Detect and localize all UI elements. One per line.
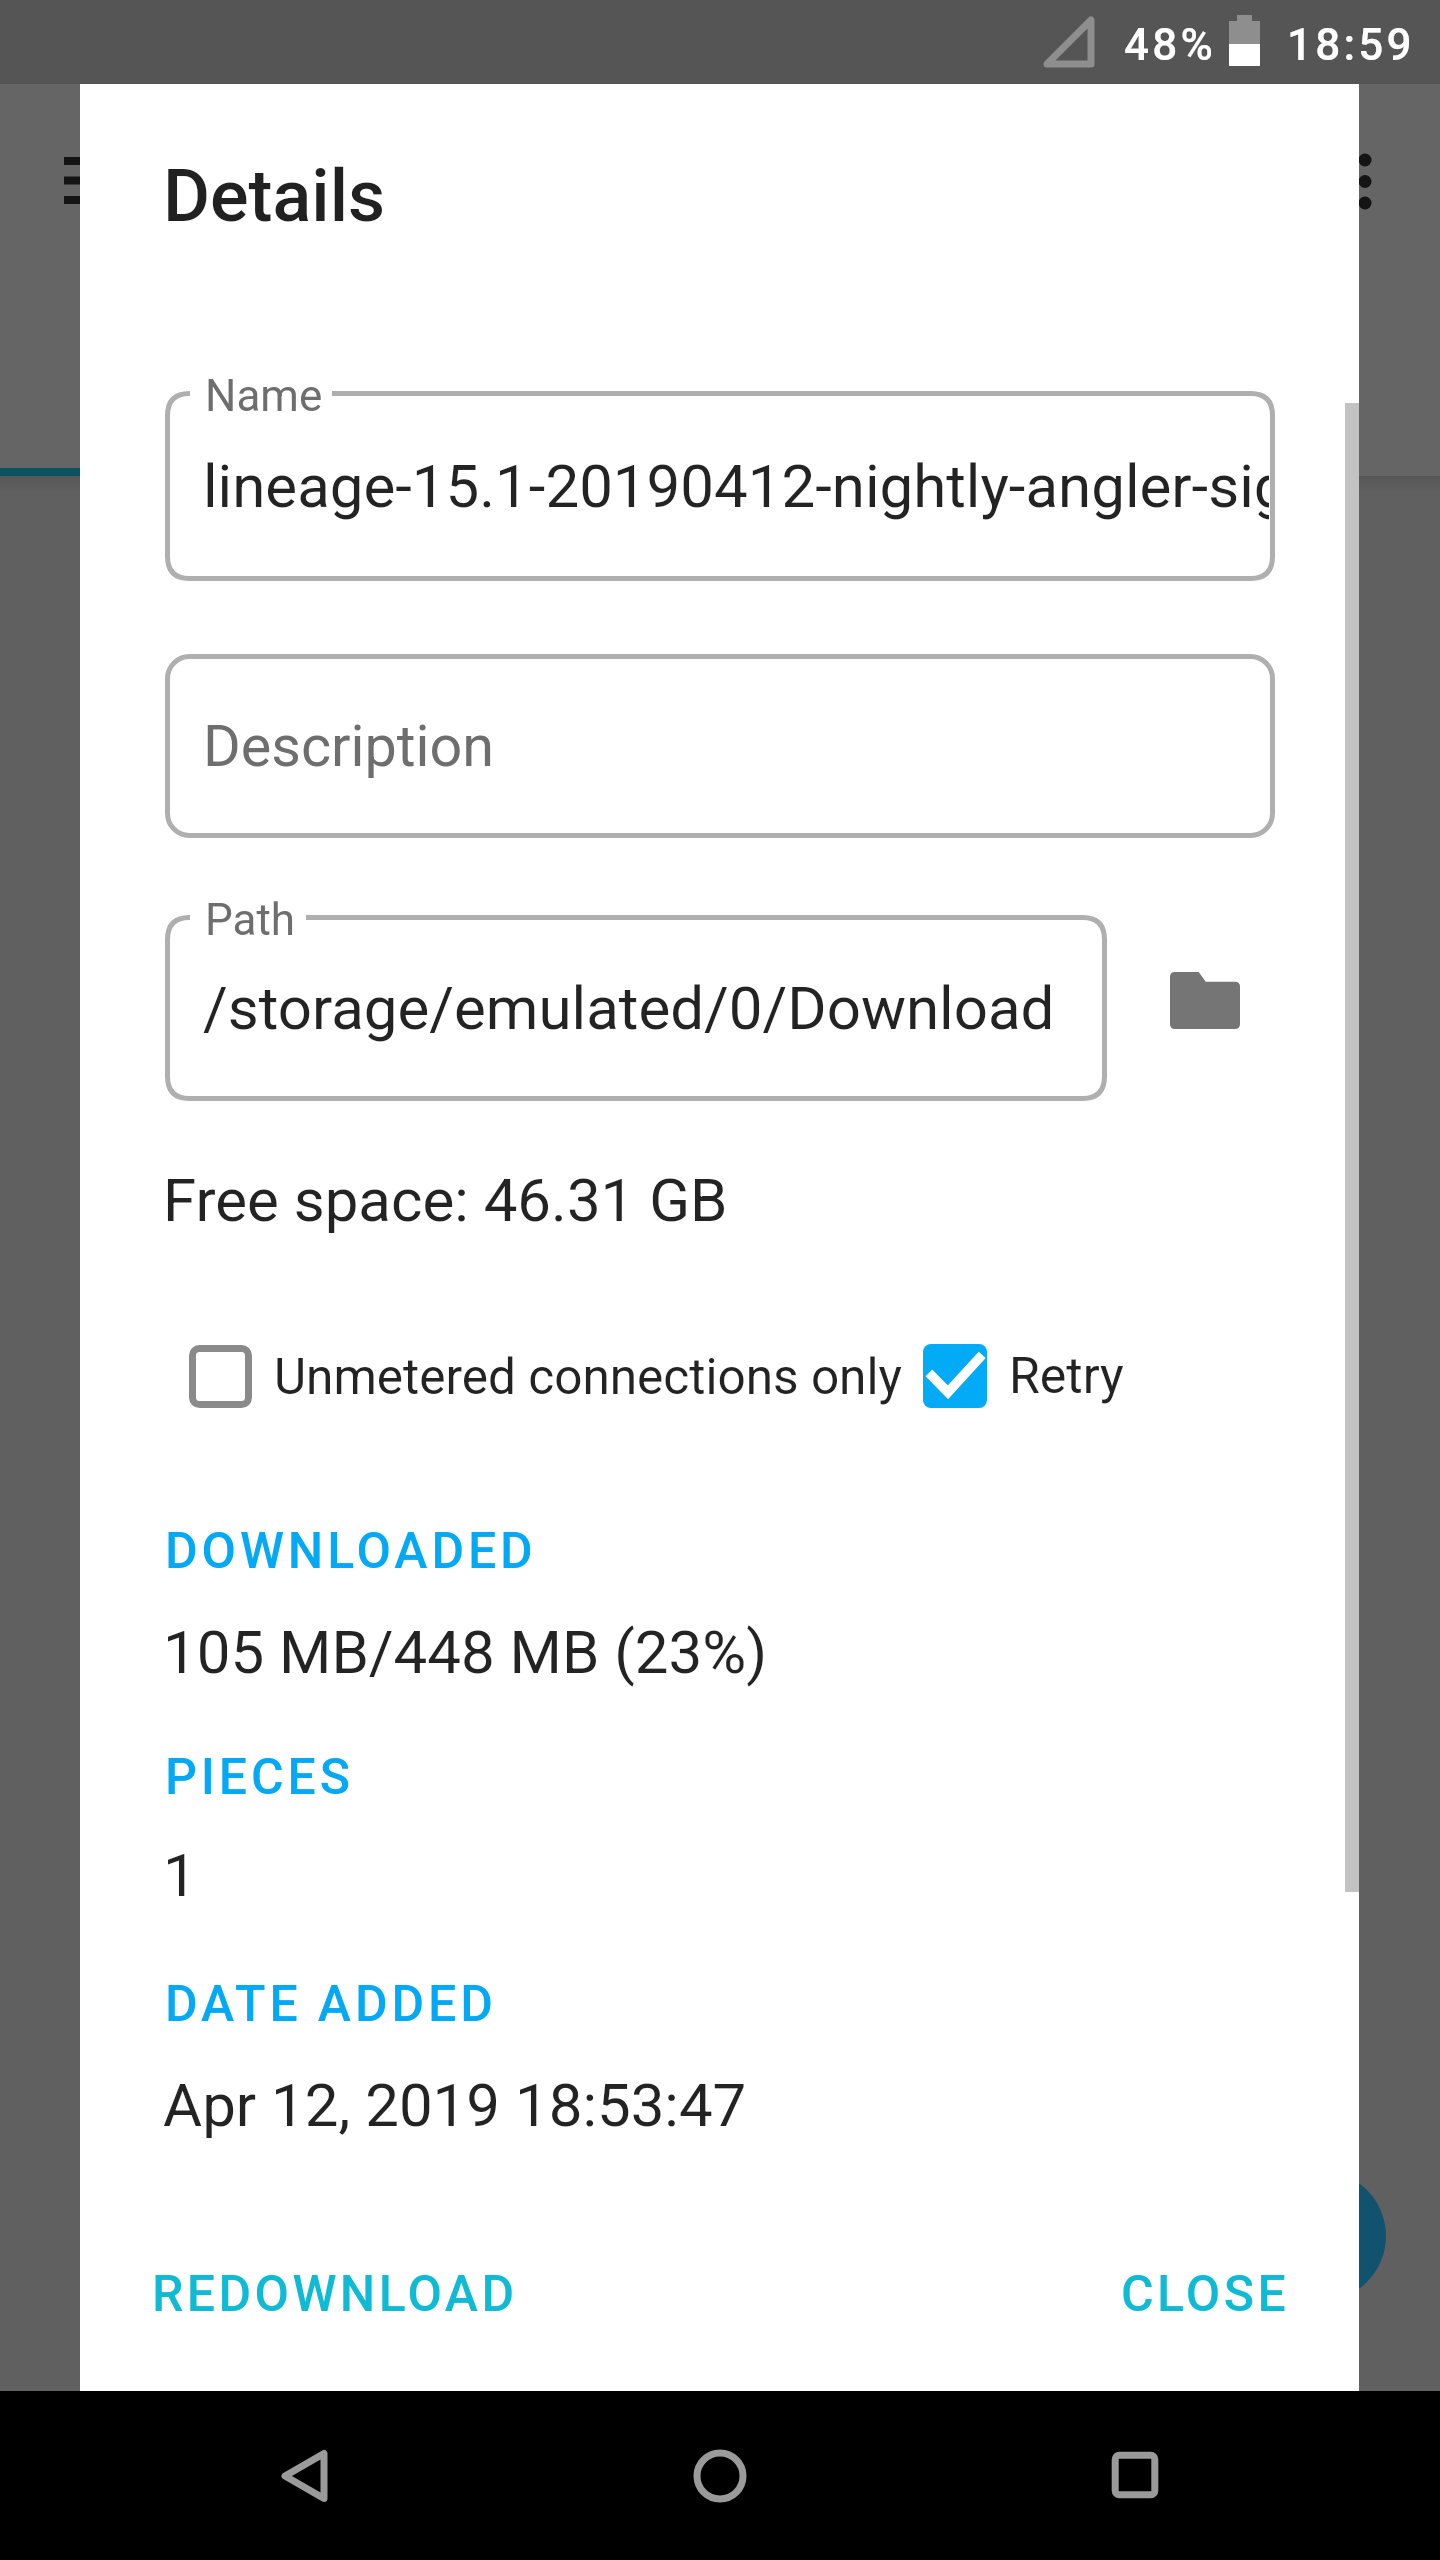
staticText: Apr 12, 2019 18:53:47 xyxy=(163,2070,747,2140)
button[interactable]: Recent apps xyxy=(1085,2425,1185,2525)
staticText: 105 MB/448 MB (23%) xyxy=(163,1617,768,1687)
staticText: Free space: 46.31 GB xyxy=(163,1165,728,1235)
button[interactable]: REDOWNLOAD xyxy=(128,2243,542,2346)
staticText: Details xyxy=(163,154,386,238)
staticText: DOWNLOADED xyxy=(165,1522,537,1581)
staticText: Description xyxy=(203,713,495,780)
staticText: Retry xyxy=(1009,1347,1124,1406)
staticText: 18:59 xyxy=(1287,19,1415,71)
staticText: DATE ADDED xyxy=(165,1975,497,2034)
staticText: Unmetered connections only xyxy=(274,1348,902,1406)
staticText: lineage-15.1-20190412-nightly-angler-sig… xyxy=(203,451,1269,521)
button[interactable]: Name xyxy=(165,391,1275,581)
button[interactable]: Choose folder xyxy=(1155,950,1255,1050)
staticText: Path xyxy=(205,894,296,946)
button[interactable]: Description xyxy=(165,654,1275,838)
staticText: /storage/emulated/0/Download xyxy=(203,973,1055,1043)
staticText: PIECES xyxy=(165,1748,354,1807)
staticText: 1 xyxy=(163,1840,197,1910)
staticText: Name xyxy=(205,370,323,422)
button[interactable]: CLOSE xyxy=(1097,2243,1314,2346)
staticText: CLOSE xyxy=(1121,2265,1290,2324)
button[interactable]: Unmetered connections only xyxy=(189,1345,902,1408)
staticText: REDOWNLOAD xyxy=(152,2265,518,2324)
button[interactable]: Retry xyxy=(923,1344,1124,1408)
staticText: 48% xyxy=(1124,19,1217,71)
button[interactable]: Path xyxy=(165,915,1107,1101)
button[interactable]: Back xyxy=(254,2425,354,2525)
button[interactable]: Home xyxy=(670,2425,770,2525)
